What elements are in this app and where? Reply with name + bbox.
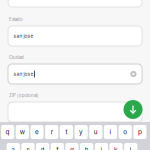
staticText: o [123, 128, 127, 136]
button[interactable]: r [45, 125, 58, 139]
button[interactable]: e [30, 125, 44, 139]
button[interactable]: a [7, 143, 20, 150]
staticText: g [70, 146, 74, 150]
button[interactable]: y [74, 125, 88, 139]
button[interactable]: l [124, 143, 137, 150]
staticText: d [41, 146, 45, 150]
staticText: r [51, 128, 53, 136]
staticText: Ciudad [9, 55, 24, 60]
button[interactable]: t [60, 125, 73, 139]
staticText: p [138, 128, 142, 136]
button[interactable]: i [104, 125, 117, 139]
staticText: l [130, 146, 132, 150]
staticText: q [6, 128, 10, 136]
button[interactable]: Download [123, 100, 142, 119]
button[interactable]: d [36, 143, 49, 150]
staticText: k [114, 146, 118, 150]
button[interactable]: p [133, 125, 146, 139]
staticText: w [20, 128, 25, 136]
staticText: san jose [13, 71, 33, 77]
button[interactable]: o [119, 125, 132, 139]
staticText: j [100, 146, 102, 150]
staticText: a [11, 146, 15, 150]
button[interactable]: w [16, 125, 29, 139]
staticText: u [94, 128, 98, 136]
staticText: t [65, 128, 67, 136]
staticText: y [79, 128, 83, 136]
staticText: s [26, 146, 29, 150]
staticText: Estado [9, 17, 23, 22]
button[interactable]: j [95, 143, 108, 150]
button[interactable]: g [65, 143, 79, 150]
staticText: i [109, 128, 111, 136]
staticText: h [85, 146, 89, 150]
button[interactable]: h [80, 143, 93, 150]
staticText: f [56, 146, 58, 150]
button[interactable]: s [21, 143, 34, 150]
button[interactable]: f [51, 143, 64, 150]
staticText: e [35, 128, 39, 136]
button[interactable]: u [89, 125, 102, 139]
button[interactable]: q [1, 125, 14, 139]
button[interactable]: k [109, 143, 123, 150]
staticText: ZIP (opcional) [9, 93, 39, 98]
staticText: san jose [13, 33, 33, 39]
